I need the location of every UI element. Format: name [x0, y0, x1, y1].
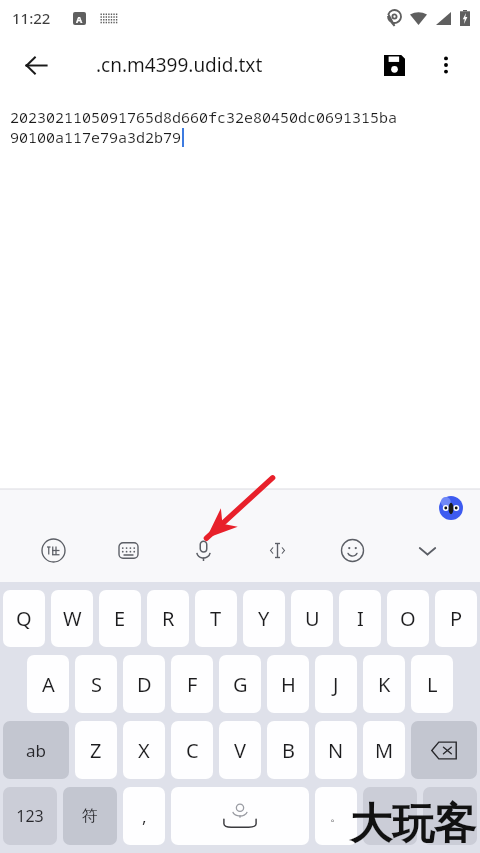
button[interactable]: Q — [3, 590, 45, 647]
button[interactable]: I — [339, 590, 381, 647]
button[interactable]: 2023021105091765d8d660fc32e80450dc069131… — [0, 94, 480, 489]
button[interactable]: Space — [171, 787, 309, 845]
button[interactable]: F — [171, 655, 213, 713]
staticText: T — [210, 605, 222, 632]
staticText: 2023021105091765d8d660fc32e80450dc069131… — [10, 107, 398, 127]
staticText: Z — [90, 737, 102, 764]
button[interactable]: ab — [3, 721, 69, 779]
staticText: N — [328, 737, 344, 764]
staticText: J — [333, 671, 339, 698]
button[interactable]: A — [27, 655, 69, 713]
staticText: E — [114, 605, 126, 632]
button[interactable]: L — [411, 655, 453, 713]
staticText: H — [281, 671, 296, 698]
staticText: V — [234, 737, 246, 764]
button[interactable]: V — [219, 721, 261, 779]
staticText: D — [137, 671, 152, 698]
staticText: F — [187, 671, 198, 698]
staticText: G — [233, 671, 248, 698]
button[interactable]: B — [267, 721, 309, 779]
button[interactable]: G — [219, 655, 261, 713]
button[interactable]: P — [435, 590, 477, 647]
staticText: 11:22 — [12, 8, 51, 28]
button[interactable]: 123 — [3, 787, 57, 845]
button[interactable]: C — [171, 721, 213, 779]
button[interactable]: U — [291, 590, 333, 647]
staticText: S — [91, 671, 102, 698]
button[interactable]: Hide keyboard — [405, 528, 449, 572]
button[interactable]: Y — [243, 590, 285, 647]
button[interactable]: D — [123, 655, 165, 713]
button[interactable]: Save — [372, 43, 416, 87]
button[interactable]: N — [315, 721, 357, 779]
button[interactable]: Backspace — [411, 721, 477, 779]
staticText: U — [305, 605, 320, 632]
staticText: Q — [16, 605, 32, 632]
staticText: , — [142, 805, 147, 828]
button[interactable]: O — [387, 590, 429, 647]
button[interactable]: Text editing — [255, 528, 299, 572]
staticText: O — [400, 605, 416, 632]
staticText: P — [450, 605, 463, 632]
button[interactable]: Back — [14, 43, 58, 87]
button[interactable]: M — [363, 721, 405, 779]
staticText: A — [76, 13, 83, 25]
button[interactable]: W — [51, 590, 93, 647]
button[interactable]: Z — [75, 721, 117, 779]
button[interactable]: J — [315, 655, 357, 713]
staticText: B — [282, 737, 295, 764]
button[interactable]: 。 — [315, 787, 357, 845]
staticText: C — [186, 737, 199, 764]
staticText: 大玩客 — [350, 798, 476, 851]
button[interactable]: E — [99, 590, 141, 647]
button[interactable]: More options — [424, 43, 468, 87]
staticText: M — [375, 737, 394, 764]
button[interactable]: S — [75, 655, 117, 713]
staticText: W — [63, 605, 82, 632]
button[interactable]: Input method — [31, 528, 75, 572]
button[interactable]: X — [123, 721, 165, 779]
button[interactable]: K — [363, 655, 405, 713]
staticText: ab — [26, 739, 46, 762]
staticText: .cn.m4399.udid.txt — [96, 52, 263, 78]
button[interactable] — [363, 787, 417, 845]
staticText: K — [378, 671, 391, 698]
button[interactable]: Voice input — [181, 528, 225, 572]
staticText: A — [42, 671, 55, 698]
button[interactable]: 符 — [63, 787, 117, 845]
staticText: X — [138, 737, 150, 764]
staticText: L — [427, 671, 438, 698]
staticText: Y — [258, 605, 270, 632]
button[interactable] — [423, 787, 477, 845]
button[interactable]: R — [147, 590, 189, 647]
staticText: I — [357, 605, 364, 632]
button[interactable]: , — [123, 787, 165, 845]
button[interactable]: T — [195, 590, 237, 647]
staticText: R — [162, 605, 175, 632]
staticText: 符 — [82, 806, 98, 826]
button[interactable]: Keyboard layout — [106, 528, 150, 572]
staticText: 90100a117e79a3d2b79 — [10, 127, 182, 147]
button[interactable]: H — [267, 655, 309, 713]
staticText: 。 — [330, 809, 342, 824]
button[interactable]: Emoji — [330, 528, 374, 572]
staticText: 123 — [16, 805, 44, 827]
